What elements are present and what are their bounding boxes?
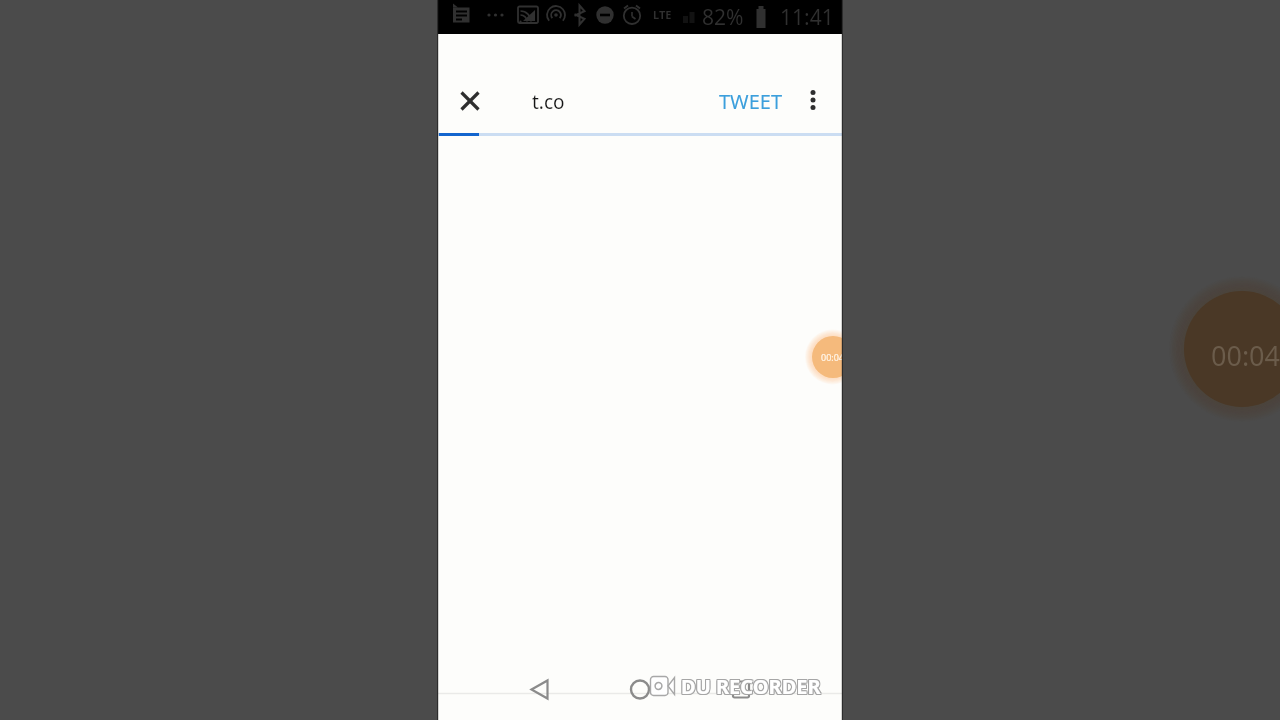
button[interactable]: Close (447, 78, 492, 123)
button[interactable]: Back (515, 666, 563, 714)
button[interactable]: Recents (717, 666, 765, 714)
staticText: 11:41 (780, 3, 834, 32)
staticText: DU RECORDER (681, 672, 821, 699)
button[interactable]: Recording timer (812, 336, 843, 378)
staticText: DU RECORDER (682, 674, 822, 701)
staticText: DU RECORDER (680, 673, 820, 700)
staticText: DU RECORDER (680, 674, 820, 701)
button[interactable]: TWEET (712, 83, 790, 119)
button[interactable]: More options (791, 78, 835, 122)
staticText: DU RECORDER (682, 672, 822, 699)
staticText: DU RECORDER (681, 673, 821, 700)
staticText: 82% (702, 3, 744, 32)
staticText: DU RECORDER (682, 673, 822, 700)
staticText: t.co (532, 89, 565, 115)
staticText: LTE (653, 7, 672, 22)
staticText: 00:04 (821, 351, 843, 363)
staticText: TWEET (719, 88, 783, 115)
staticText: 00:04 (1211, 337, 1280, 374)
button[interactable]: Home (616, 666, 664, 714)
staticText: DU RECORDER (680, 672, 820, 699)
staticText: DU RECORDER (681, 674, 821, 701)
